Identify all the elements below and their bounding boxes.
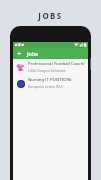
staticText: Little Dragon Initiative Organization	[28, 68, 85, 73]
button[interactable]: Professional Football Coach/Instructor	[13, 59, 88, 75]
staticText: Jobs	[27, 50, 39, 57]
staticText: JOBS	[0, 10, 101, 21]
staticText: Professional Football Coach/Instructor	[28, 61, 85, 67]
staticText: European union (EU)	[28, 84, 63, 89]
button[interactable]: Nursing (1 POSITION)	[13, 75, 88, 91]
button[interactable]: Navigate up	[15, 49, 24, 58]
staticText: Nursing (1 POSITION)	[28, 77, 72, 83]
